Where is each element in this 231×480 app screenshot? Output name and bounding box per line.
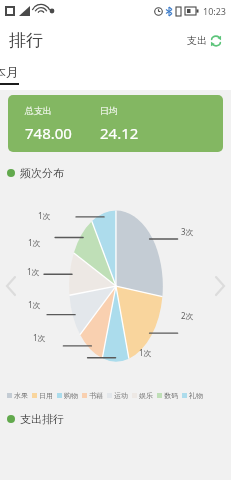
- button[interactable]: 总支出: [8, 95, 223, 152]
- staticText: 支出: [187, 34, 207, 47]
- staticText: 1次: [33, 332, 46, 343]
- staticText: 2次: [181, 310, 194, 321]
- staticText: 748.00: [25, 123, 72, 143]
- staticText: 日均: [100, 105, 118, 116]
- staticText: 总支出: [25, 105, 52, 116]
- staticText: 运动: [114, 391, 128, 400]
- staticText: 排行: [9, 30, 43, 51]
- button[interactable]: 支出: [184, 29, 225, 52]
- staticText: 娱乐: [139, 391, 153, 400]
- staticText: 日用: [39, 391, 53, 400]
- staticText: 礼物: [189, 391, 203, 400]
- staticText: 10:23: [203, 5, 227, 17]
- staticText: 1次: [28, 299, 41, 310]
- staticText: 1次: [38, 210, 51, 221]
- staticText: 书籍: [89, 391, 103, 400]
- staticText: 1次: [139, 347, 152, 358]
- staticText: 购物: [64, 391, 78, 400]
- other: Switch income expense: [210, 35, 222, 47]
- staticText: 数码: [164, 391, 178, 400]
- staticText: 1次: [28, 237, 41, 248]
- staticText: 支出排行: [20, 412, 64, 426]
- staticText: 本月: [0, 64, 19, 80]
- staticText: 水果: [14, 391, 28, 400]
- button[interactable]: 本月: [0, 64, 19, 85]
- staticText: 频次分布: [20, 166, 64, 180]
- staticText: 1次: [27, 266, 40, 277]
- staticText: 24.12: [100, 123, 139, 143]
- staticText: 3次: [181, 226, 194, 237]
